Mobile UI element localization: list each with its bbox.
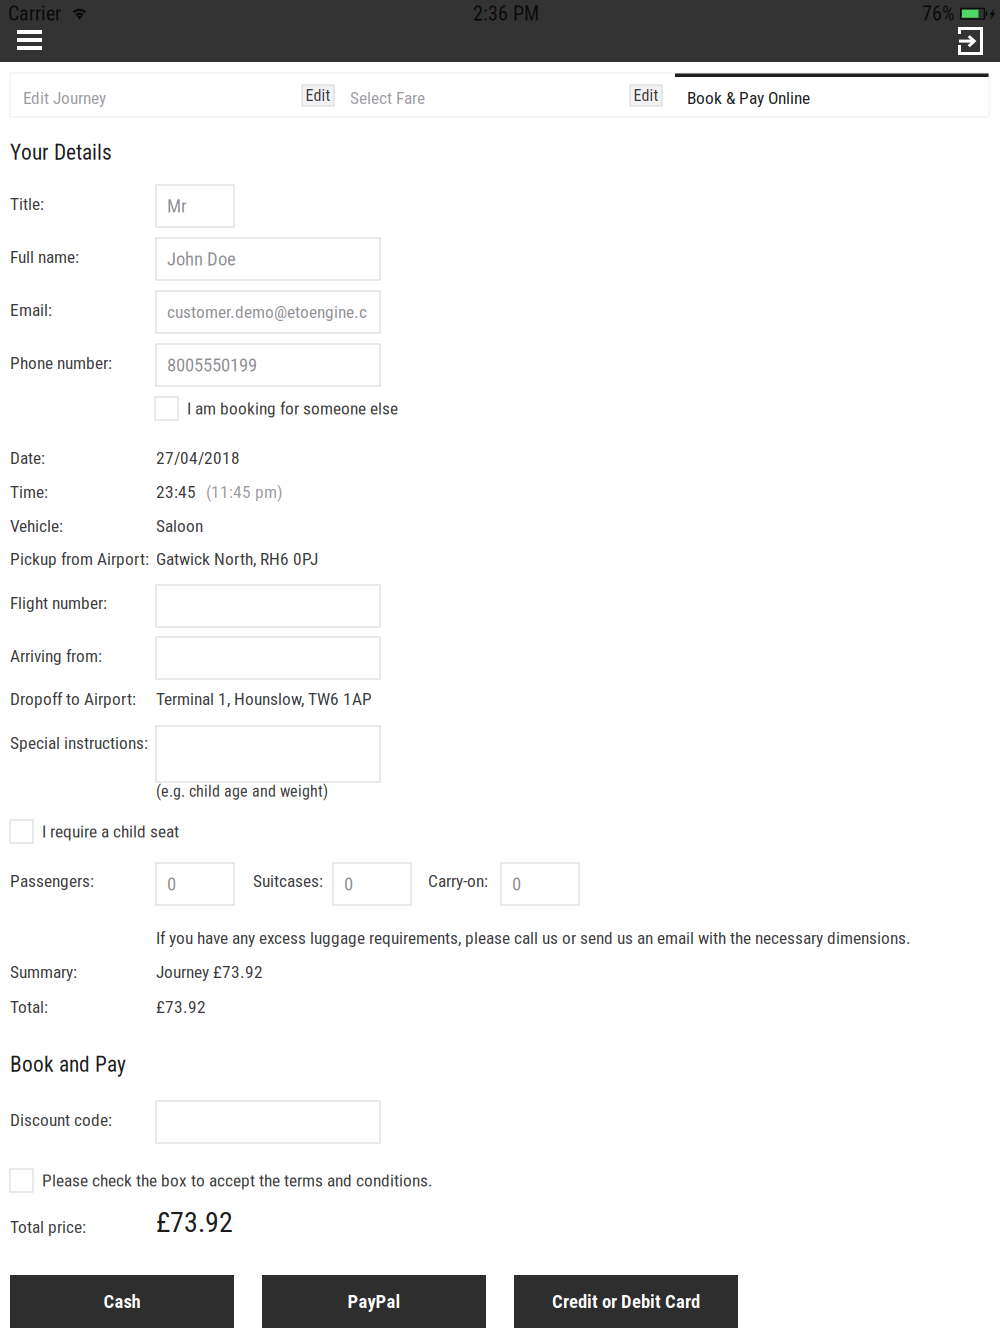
staticText: 0 [167,873,176,895]
staticText: 23:45 [156,482,196,502]
button[interactable]: Book & Pay Online [665,73,989,117]
staticText: Vehicle: [10,516,63,536]
staticText: Mr [167,195,187,217]
staticText: If you have any excess luggage requireme… [156,928,911,948]
staticText: Cash [103,1291,140,1312]
staticText: Dropoff to Airport: [10,689,136,709]
staticText: Special instructions: [10,733,148,753]
staticText: Summary: [10,962,77,982]
staticText: 27/04/2018 [156,448,240,468]
staticText: Carrier [8,2,61,25]
staticText: Pickup from Airport: [10,549,149,569]
button[interactable]: Sign in [951,23,990,59]
staticText: Time: [10,482,48,502]
staticText: customer.demo@etoengine.c [167,302,367,322]
staticText: 0 [512,873,521,895]
button[interactable]: Credit or Debit Card [514,1275,738,1328]
staticText: Edit [305,86,330,105]
staticText: 0 [344,873,353,895]
staticText: £73.92 [156,997,206,1017]
staticText: Email: [10,300,52,320]
staticText: Phone number: [10,353,112,373]
staticText: 76% [922,2,955,25]
staticText: Arriving from: [10,646,102,666]
button[interactable]: Edit Journey [10,73,337,117]
staticText: Your Details [10,140,112,165]
staticText: Gatwick North, RH6 0PJ [156,549,318,569]
button[interactable]: Open menu [9,22,50,58]
staticText: Total: [10,997,48,1017]
button[interactable]: I require a child seat [10,819,179,844]
staticText: John Doe [167,248,236,270]
staticText: Total price: [10,1217,86,1237]
staticText: 8005550199 [167,354,257,376]
staticText: Saloon [156,516,203,536]
button[interactable]: Please check the box to accept the terms… [10,1168,433,1193]
staticText: Edit Journey [23,88,106,108]
staticText: Full name: [10,247,79,267]
staticText: I am booking for someone else [187,398,398,419]
staticText: Date: [10,448,45,468]
button[interactable]: PayPal [262,1275,486,1328]
staticText: Edit [633,86,658,105]
button[interactable]: Cash [10,1275,234,1328]
staticText: (e.g. child age and weight) [156,782,328,801]
staticText: Please check the box to accept the terms… [42,1170,433,1191]
button[interactable]: I am booking for someone else [155,396,398,421]
staticText: Terminal 1, Hounslow, TW6 1AP [156,689,372,709]
staticText: (11:45 pm) [206,482,283,502]
staticText: Journey £73.92 [156,962,263,982]
staticText: Discount code: [10,1110,112,1130]
staticText: Book and Pay [10,1052,126,1077]
staticText: PayPal [347,1291,400,1312]
staticText: Book & Pay Online [687,88,810,108]
staticText: 2:36 PM [473,2,539,25]
staticText: Select Fare [350,88,425,108]
staticText: Suitcases: [253,871,323,891]
staticText: £73.92 [156,1206,233,1239]
staticText: Carry-on: [428,871,488,891]
button[interactable]: Select Fare [337,73,665,117]
staticText: Flight number: [10,593,107,613]
staticText: Credit or Debit Card [552,1291,700,1312]
staticText: Title: [10,194,44,214]
staticText: I require a child seat [42,821,179,842]
staticText: Passengers: [10,871,94,891]
